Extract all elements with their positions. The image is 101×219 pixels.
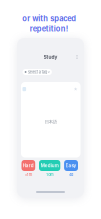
staticText: <1m xyxy=(25,172,32,177)
staticText: Select a tag xyxy=(28,70,47,74)
staticText: Hard xyxy=(23,163,34,168)
staticText: 日本語 xyxy=(45,119,57,124)
button[interactable]: Easy xyxy=(64,160,78,177)
button[interactable]: Select a tag xyxy=(22,69,52,75)
button[interactable]: More options xyxy=(74,54,80,60)
staticText: or with spaced repetition! xyxy=(22,14,76,33)
button[interactable]: Hard xyxy=(21,160,35,177)
button[interactable]: Play audio xyxy=(22,87,26,91)
staticText: 10m xyxy=(46,172,53,177)
button[interactable]: Medium xyxy=(39,160,60,177)
button[interactable]: Favourite xyxy=(74,87,77,91)
staticText: Study xyxy=(43,54,57,60)
staticText: 4d xyxy=(69,172,73,177)
staticText: Easy xyxy=(65,163,76,168)
staticText: Medium xyxy=(41,163,59,168)
